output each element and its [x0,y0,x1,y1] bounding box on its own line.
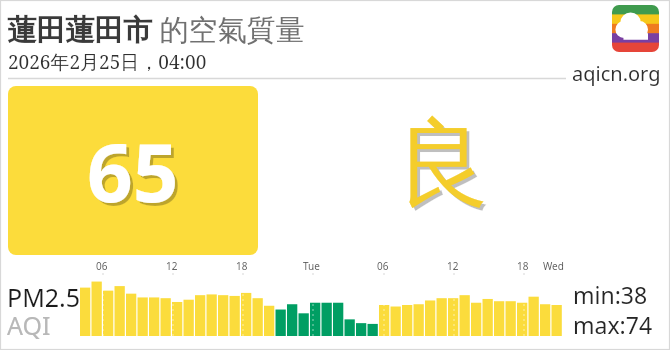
staticText: 65 [90,119,182,228]
staticText: 18 [236,259,248,273]
staticText: 12 [447,259,459,273]
staticText: 蓮田蓮田市 [7,12,152,49]
button[interactable]: aqicn.org [612,5,659,52]
staticText: 良 [395,105,490,225]
staticText: Tue [303,259,320,273]
button[interactable]: 65 [8,86,258,255]
button[interactable]: PM2.5 AQI history chart [0,258,670,340]
staticText: Wed [543,259,564,273]
staticText: 的空氣質量 [152,9,305,49]
button[interactable]: 良 [392,100,492,230]
staticText: 18 [517,259,529,273]
staticText: 2026年2月25日，04:00 [8,49,207,75]
button[interactable]: 蓮田蓮田市 [7,9,305,49]
staticText: 06 [96,259,108,273]
button[interactable]: aqicn.org [572,60,661,87]
staticText: 06 [377,259,389,273]
staticText: min:38 [573,279,648,310]
staticText: PM2.5 [7,280,81,314]
staticText: 12 [166,259,178,273]
staticText: max:74 [573,309,653,340]
staticText: AQI [7,308,51,342]
staticText: 良 [398,108,493,228]
staticText: 65 [87,116,179,225]
